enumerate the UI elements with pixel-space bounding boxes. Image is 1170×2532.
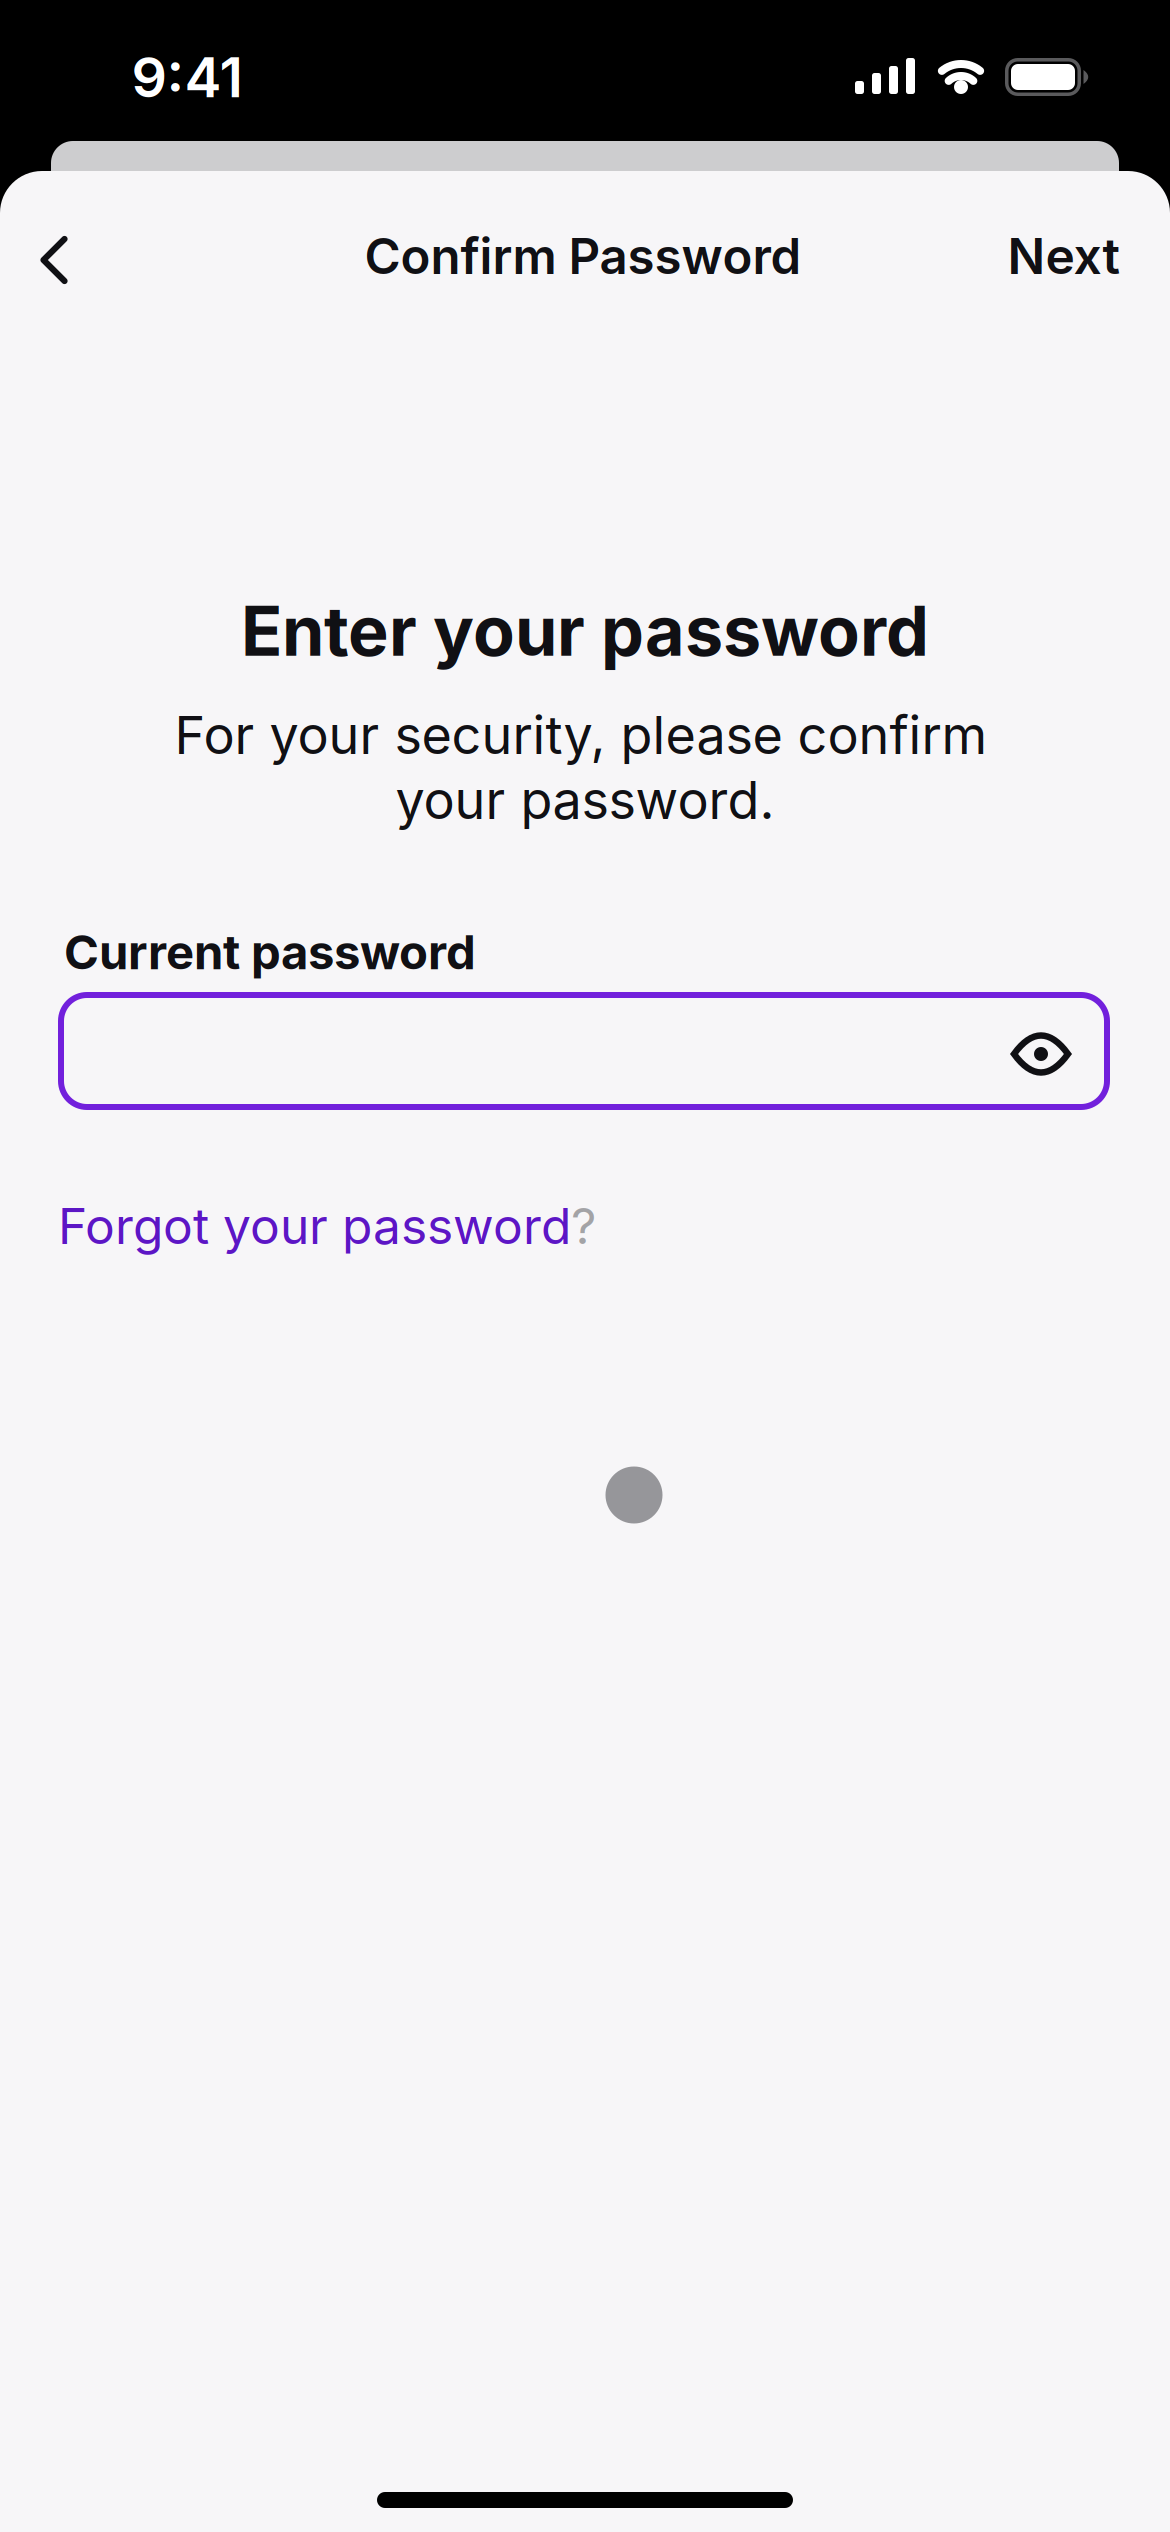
staticText: ?	[571, 1196, 596, 1256]
staticText: Next	[1007, 226, 1120, 286]
button[interactable]: Back	[14, 220, 94, 300]
staticText: Enter your password	[241, 590, 929, 672]
staticText: For your security, please confirm	[174, 703, 987, 766]
button[interactable]: Show password	[993, 1006, 1089, 1102]
staticText: Confirm Password	[364, 226, 801, 286]
button[interactable]: Next	[1007, 226, 1120, 286]
button[interactable]: Current password	[58, 992, 1110, 1110]
button[interactable]: Forgot your password	[58, 1196, 596, 1256]
staticText: 9:41	[131, 43, 242, 110]
staticText: your password.	[395, 768, 774, 831]
staticText: Current password	[64, 923, 476, 980]
staticText: Forgot your password	[58, 1196, 571, 1256]
